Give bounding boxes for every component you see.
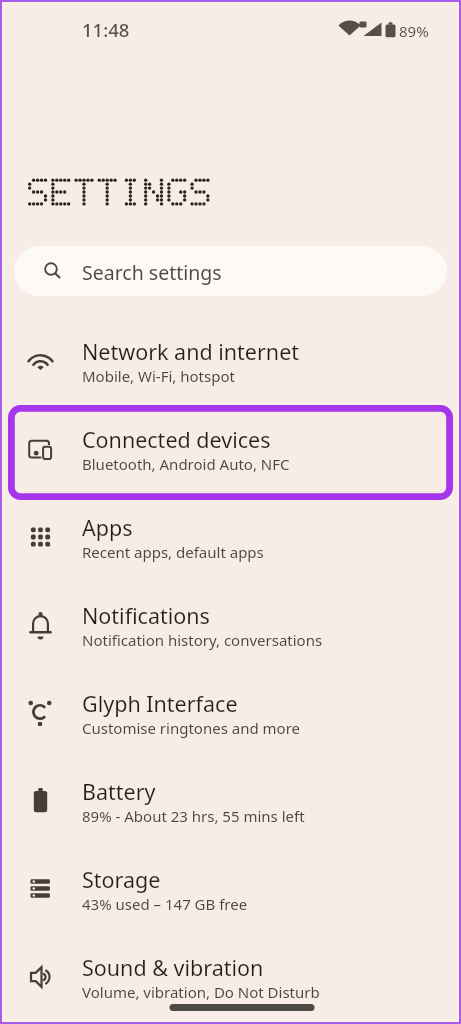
staticText: 11:48 xyxy=(82,17,130,42)
staticText: Notification history, conversations xyxy=(82,630,323,650)
staticText: Glyph Interface xyxy=(82,689,238,718)
staticText: 43% used – 147 GB free xyxy=(82,894,248,914)
staticText: Connected devices xyxy=(82,425,271,454)
staticText: Bluetooth, Android Auto, NFC xyxy=(82,454,290,474)
button[interactable]: Search settings xyxy=(14,246,447,296)
staticText: 89% xyxy=(399,21,429,41)
staticText: Recent apps, default apps xyxy=(82,542,264,562)
button[interactable]: Battery xyxy=(0,757,461,845)
staticText: Mobile, Wi-Fi, hotspot xyxy=(82,366,235,386)
button[interactable]: Glyph Interface xyxy=(0,669,461,757)
staticText: Customise ringtones and more xyxy=(82,718,300,738)
staticText: Network and internet xyxy=(82,337,300,366)
staticText: Sound & vibration xyxy=(82,953,264,982)
staticText: 89% - About 23 hrs, 55 mins left xyxy=(82,806,305,826)
staticText: Notifications xyxy=(82,601,210,630)
button[interactable]: Apps xyxy=(0,493,461,581)
button[interactable]: Sound & vibration xyxy=(0,933,461,1021)
button[interactable]: Notifications xyxy=(0,581,461,669)
staticText: Search settings xyxy=(82,259,222,286)
button[interactable]: Connected devices xyxy=(0,405,461,493)
staticText: Battery xyxy=(82,777,156,806)
button[interactable]: Network and internet xyxy=(0,317,461,405)
staticText: Apps xyxy=(82,513,133,542)
staticText: Storage xyxy=(82,865,161,894)
staticText: Volume, vibration, Do Not Disturb xyxy=(82,982,320,1002)
button[interactable]: Storage xyxy=(0,845,461,933)
